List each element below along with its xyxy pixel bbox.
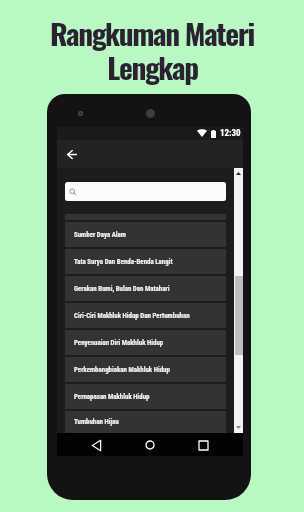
button[interactable]: Recent apps xyxy=(193,435,213,455)
button[interactable]: Sumber Daya Alam xyxy=(65,222,226,247)
staticText: Penyesuaian Diri Makhluk Hidup xyxy=(74,339,164,347)
staticText: Perkembangbiakan Makhluk Hidup xyxy=(74,366,170,374)
staticText: Tumbuhan Hijau xyxy=(74,418,119,426)
button[interactable]: Tata Surya Dan Benda-Benda Langit xyxy=(65,249,226,274)
button[interactable]: Ciri-Ciri Makhluk Hidup Dan Pertumbuhan xyxy=(65,303,226,328)
button[interactable]: Tumbuhan Hijau xyxy=(65,411,226,433)
button[interactable]: Back xyxy=(62,144,82,164)
button[interactable]: Penyesuaian Diri Makhluk Hidup xyxy=(65,330,226,355)
staticText: Rangkuman Materi xyxy=(50,11,254,55)
staticText: Tata Surya Dan Benda-Benda Langit xyxy=(74,258,173,266)
staticText: Lengkap xyxy=(107,45,198,89)
button[interactable]: Perkembangbiakan Makhluk Hidup xyxy=(65,357,226,382)
staticText: Ciri-Ciri Makhluk Hidup Dan Pertumbuhan xyxy=(74,312,190,320)
button[interactable]: Pernapasan Makhluk Hidup xyxy=(65,384,226,409)
button[interactable] xyxy=(65,182,226,201)
staticText: Pernapasan Makhluk Hidup xyxy=(74,393,150,401)
button[interactable]: Back xyxy=(86,435,106,455)
staticText: Sumber Daya Alam xyxy=(74,231,126,239)
staticText: Gerakan Bumi, Bulan Dan Matahari xyxy=(74,285,170,293)
button[interactable]: Home xyxy=(140,435,160,455)
staticText: 12:30 xyxy=(220,128,241,139)
button[interactable]: Gerakan Bumi, Bulan Dan Matahari xyxy=(65,276,226,301)
